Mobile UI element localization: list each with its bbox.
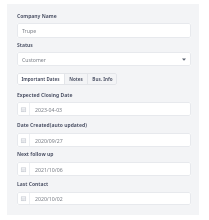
staticText: Expected Closing Date: [17, 92, 73, 99]
staticText: Trupe: [22, 27, 37, 34]
staticText: 2021/10/06: [35, 166, 63, 173]
button[interactable]: 2020/10/02: [17, 192, 191, 205]
staticText: Next follow up: [17, 151, 54, 158]
button[interactable]: Bus. Info: [88, 73, 117, 85]
staticText: 2023-04-03: [35, 106, 63, 113]
button[interactable]: Customer: [17, 52, 191, 66]
staticText: Status: [17, 42, 33, 49]
staticText: Date Created(auto updated): [17, 122, 87, 129]
button[interactable]: 2020/09/27: [17, 133, 191, 147]
button[interactable]: Trupe: [17, 23, 191, 38]
staticText: Bus. Info: [92, 76, 113, 82]
staticText: Customer: [22, 56, 46, 63]
staticText: Important Dates: [21, 76, 60, 82]
button[interactable]: 2023-04-03: [17, 102, 191, 116]
staticText: Notes: [69, 76, 83, 82]
staticText: 2020/09/27: [35, 137, 63, 144]
staticText: Company Name: [17, 13, 57, 20]
staticText: 2020/10/02: [35, 195, 63, 202]
staticText: Last Contact: [17, 181, 49, 188]
button[interactable]: Notes: [65, 73, 87, 85]
button[interactable]: 2021/10/06: [17, 162, 191, 176]
button[interactable]: Important Dates: [17, 73, 64, 85]
